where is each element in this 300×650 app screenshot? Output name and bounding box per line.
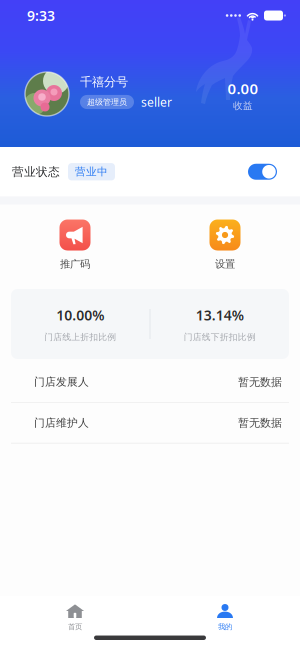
staticText: 营业中	[75, 165, 108, 178]
staticText: 0.00	[227, 78, 258, 99]
staticText: 营业状态	[12, 164, 60, 179]
staticText: 暂无数据	[238, 416, 282, 430]
button[interactable]: 我的	[150, 604, 300, 631]
staticText: 推广码	[60, 257, 90, 270]
staticText: 收益	[233, 100, 253, 112]
staticText: 门店线上折扣比例	[44, 331, 116, 343]
staticText: 设置	[215, 257, 235, 270]
button[interactable]: 首页	[0, 604, 150, 631]
staticText: 千禧分号	[80, 74, 128, 90]
staticText: 门店线下折扣比例	[184, 331, 256, 343]
staticText: 门店维护人	[34, 416, 89, 430]
button[interactable]: 营业状态开关	[248, 164, 277, 180]
staticText: 超级管理员	[87, 97, 127, 107]
staticText: seller	[141, 94, 172, 110]
button[interactable]: 门店发展人	[0, 362, 300, 403]
staticText: 13.14%	[196, 305, 244, 324]
staticText: 暂无数据	[238, 375, 282, 389]
staticText: 首页	[68, 622, 82, 631]
button[interactable]: 门店维护人	[0, 403, 300, 444]
staticText: 9:33	[27, 6, 55, 25]
button[interactable]: 推广码	[59, 219, 90, 270]
staticText: 门店发展人	[34, 375, 89, 389]
staticText: 10.00%	[56, 305, 104, 324]
staticText: 我的	[218, 622, 232, 631]
button[interactable]: 设置	[209, 219, 240, 270]
